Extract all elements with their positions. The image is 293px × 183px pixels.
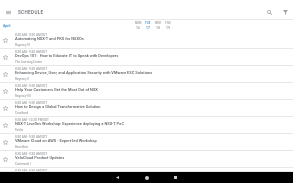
button[interactable]: 8:30 AM - 9:30 AM EDT xyxy=(0,100,293,117)
button[interactable]: 8:30 AM - 9:30 AM EDT xyxy=(0,134,293,151)
staticText: How to Design a Global Transformative So… xyxy=(15,104,101,109)
staticText: WED xyxy=(155,22,162,25)
button[interactable]: WED xyxy=(153,20,163,32)
button[interactable]: 8:30 AM - 9:30 AM EDT xyxy=(0,83,293,100)
staticText: Enhancing Device, User, and Application … xyxy=(15,70,153,75)
button[interactable]: 8:30 AM - 9:30 AM EDT xyxy=(0,168,293,172)
staticText: Regency VI xyxy=(15,43,30,47)
staticText: Beachline xyxy=(15,145,29,149)
button[interactable]: Back xyxy=(103,172,132,183)
staticText: 8:30 AM - 9:30 AM EDT xyxy=(15,67,48,71)
staticText: MON xyxy=(135,22,142,25)
staticText: 8:30 AM - 9:30 AM EDT xyxy=(15,135,48,139)
staticText: 17 xyxy=(146,26,150,30)
button[interactable]: 8:30 AM - 9:30 AM EDT xyxy=(0,66,293,83)
staticText: 8:30 AM - 9:30 AM EDT xyxy=(15,101,48,105)
staticText: 8:30 AM - 9:30 AM EDT xyxy=(15,169,48,173)
button[interactable]: Open navigation menu xyxy=(0,2,16,22)
button[interactable]: 8:30 AM - 9:30 AM EDT xyxy=(0,151,293,168)
staticText: Help Your Customers Get the Most Out of … xyxy=(15,87,98,92)
staticText: TUE xyxy=(145,22,151,25)
staticText: 18 xyxy=(156,26,160,30)
staticText: 8:30 AM - 9:30 AM EDT xyxy=(15,152,48,156)
button[interactable]: Recent apps xyxy=(161,172,190,183)
staticText: Fairlie xyxy=(15,128,24,132)
staticText: VMware Cloud on AWS - Expert-led Worksho… xyxy=(15,138,97,143)
button[interactable]: 8:30 AM - 9:30 AM EDT xyxy=(0,49,293,66)
staticText: 19 xyxy=(166,26,170,30)
staticText: 8:30 AM - 9:30 AM EDT xyxy=(15,33,48,37)
staticText: SCHEDULE xyxy=(18,10,44,15)
staticText: Regency V xyxy=(15,77,30,81)
staticText: Centennial I xyxy=(15,162,31,166)
button[interactable]: Home xyxy=(132,172,161,183)
button[interactable]: Search xyxy=(261,2,277,22)
staticText: Regency VII xyxy=(15,94,31,98)
staticText: 8:30 AM - 12:30 PM EDT xyxy=(15,118,49,122)
button[interactable]: THU xyxy=(163,20,173,32)
button[interactable]: 8:30 AM - 12:30 PM EDT xyxy=(0,117,293,134)
staticText: 16 xyxy=(136,26,140,30)
staticText: THU xyxy=(165,22,171,25)
staticText: VeloCloud Product Updates xyxy=(15,155,65,160)
staticText: Courtland xyxy=(15,111,29,115)
staticText: NSX-T LiveDev Workshop: Experience deplo… xyxy=(15,121,125,126)
button[interactable]: MON xyxy=(133,20,143,32)
button[interactable]: TUE xyxy=(143,20,153,32)
staticText: 8:30 AM - 9:30 AM EDT xyxy=(15,84,48,88)
staticText: Automating NSX-T and PKS for NSXOs xyxy=(15,36,84,41)
button[interactable]: 8:30 AM - 9:30 AM EDT xyxy=(0,32,293,49)
staticText: The Learning Center xyxy=(15,60,42,64)
staticText: DevOps 101: How to Educate IT to Speak w… xyxy=(15,53,119,58)
staticText: 8:30 AM - 9:30 AM EDT xyxy=(15,50,48,54)
button[interactable]: Filter xyxy=(277,2,293,22)
staticText: April xyxy=(3,24,11,28)
